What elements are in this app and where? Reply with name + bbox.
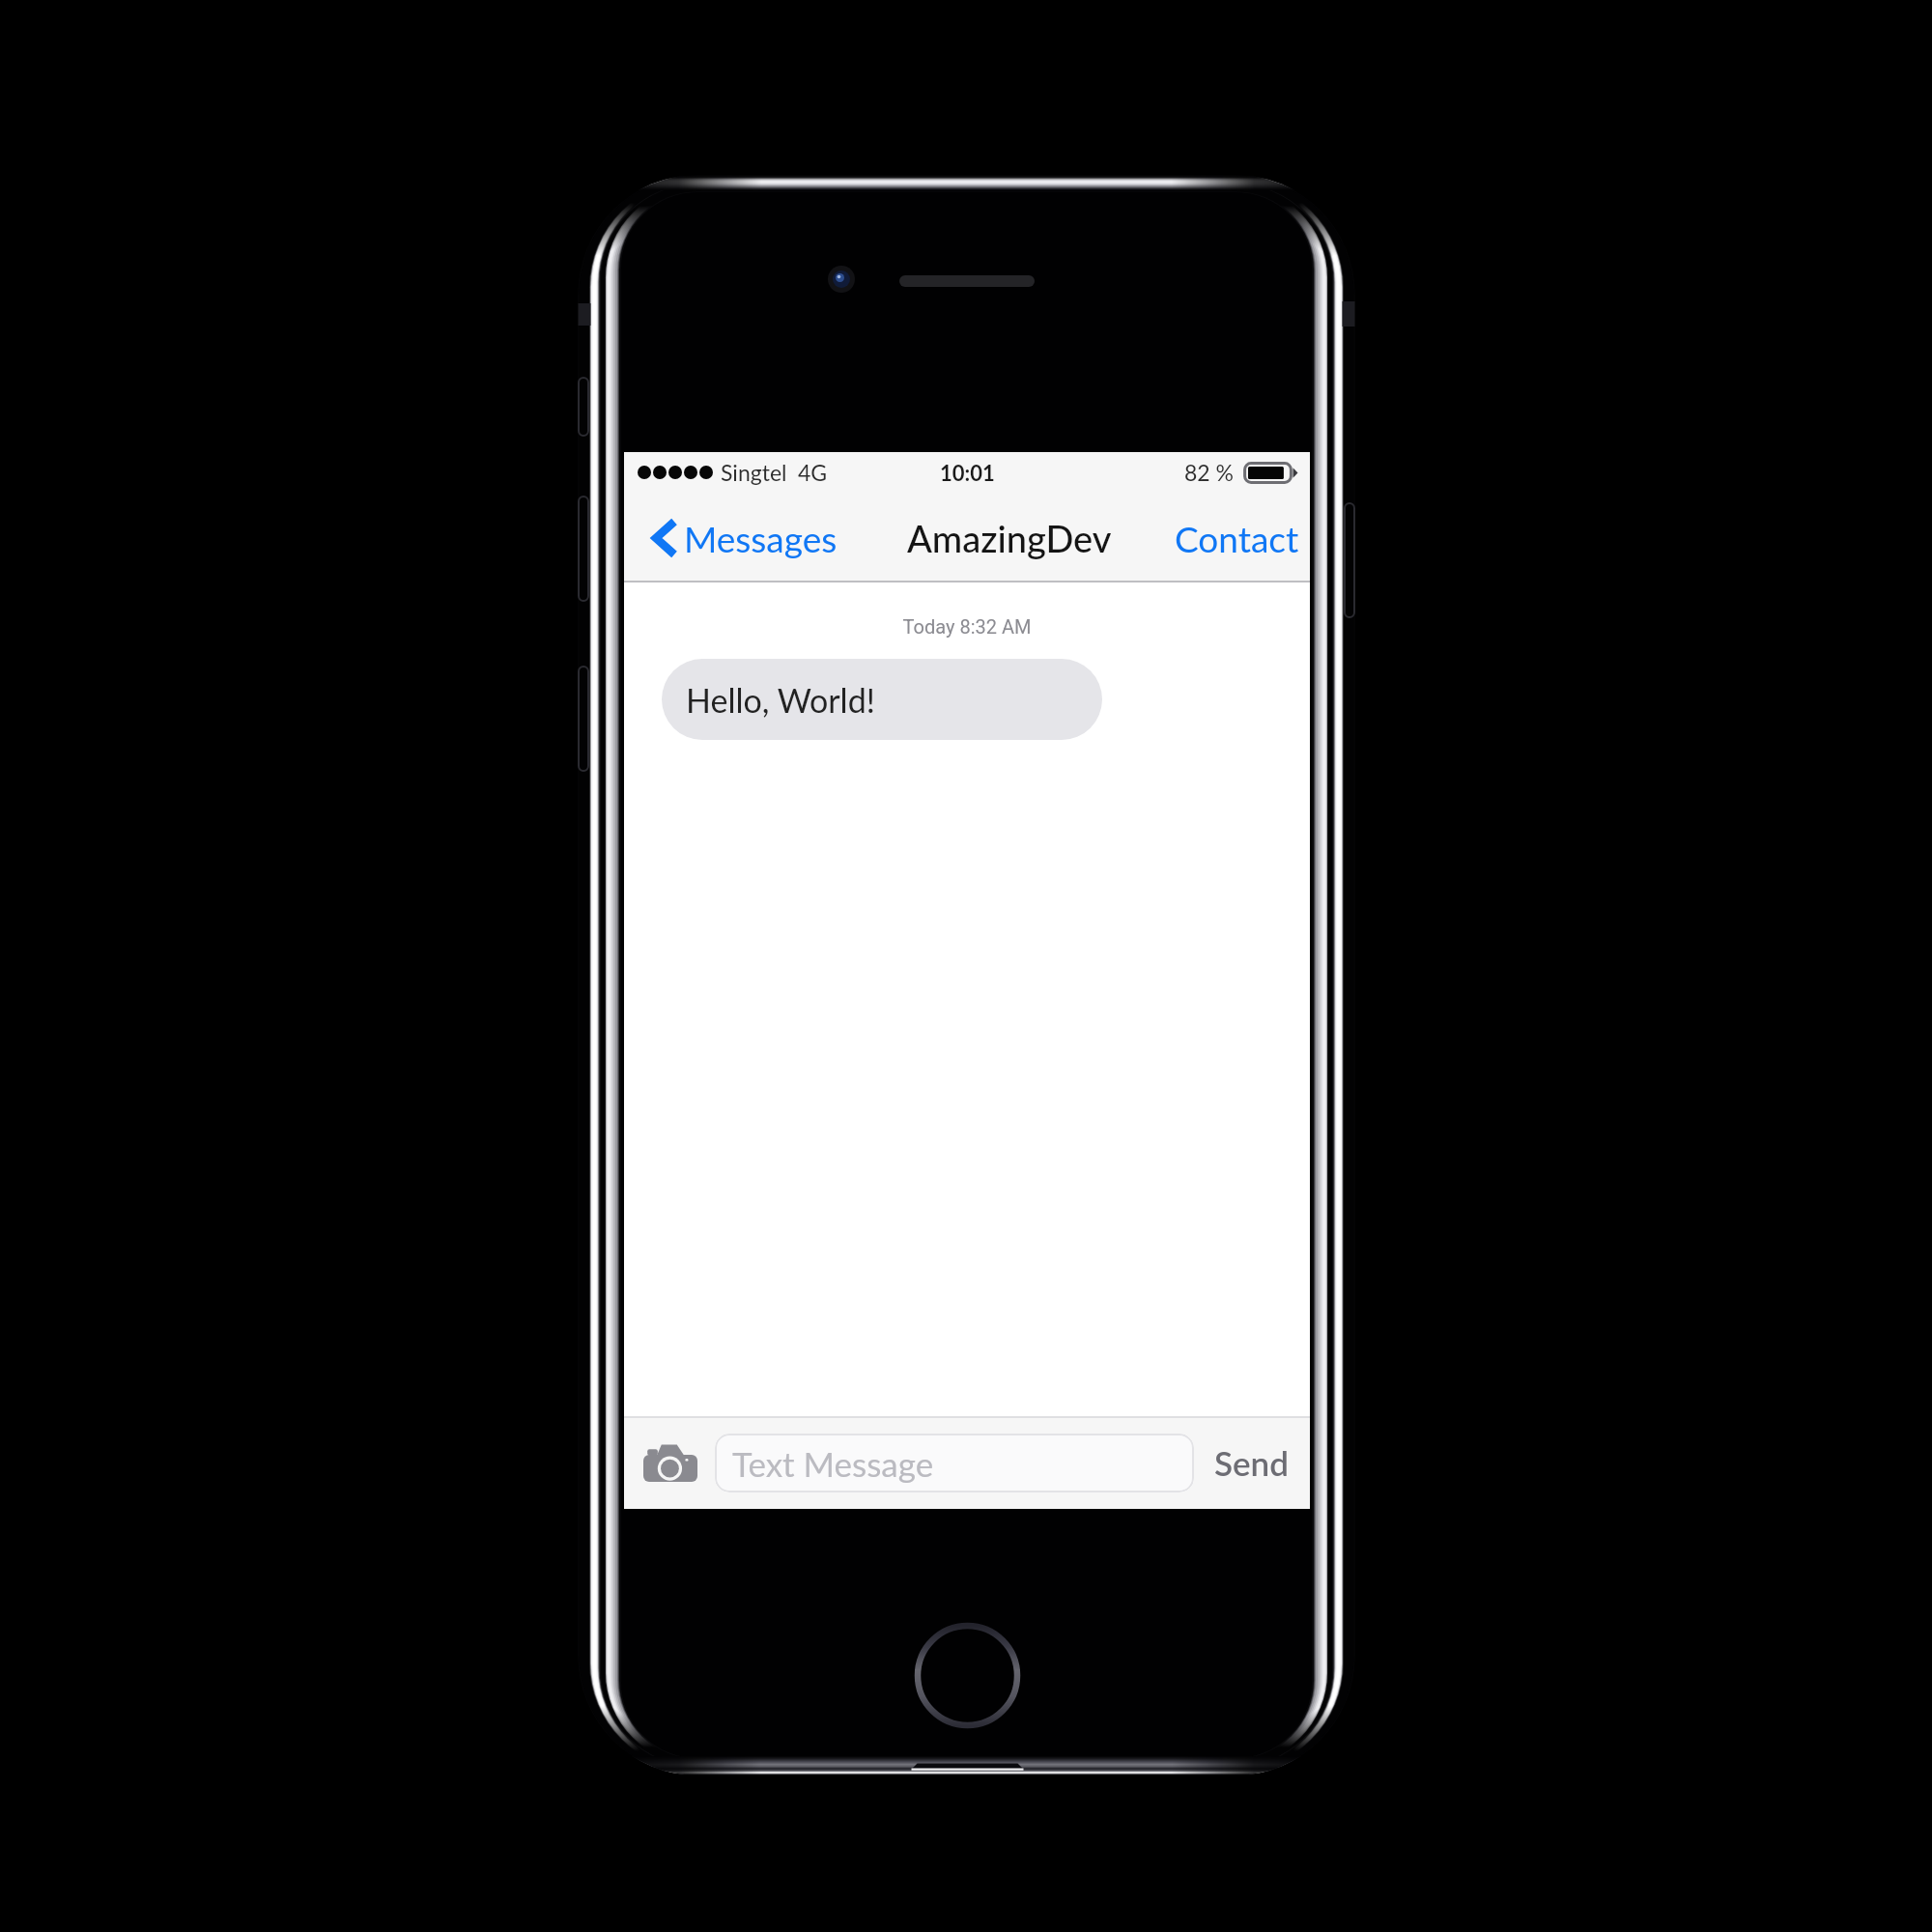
staticText: Hello, World! xyxy=(686,680,875,720)
button[interactable]: Messages xyxy=(624,493,845,582)
button[interactable]: Send xyxy=(1204,1416,1299,1509)
staticText: Contact xyxy=(1175,517,1299,559)
staticText: Singtel xyxy=(721,459,787,486)
staticText: Text Message xyxy=(732,1443,934,1484)
staticText: AmazingDev xyxy=(907,516,1112,560)
staticText: Today 8:32 AM xyxy=(624,615,1310,638)
button[interactable]: Hello, World! xyxy=(662,659,1102,740)
button[interactable]: Text Message xyxy=(715,1434,1194,1492)
staticText: 82 % xyxy=(1184,459,1235,486)
staticText: Send xyxy=(1214,1442,1289,1483)
button[interactable]: Take photo xyxy=(642,1435,698,1491)
staticText: 4G xyxy=(798,459,828,486)
staticText: 10:01 xyxy=(940,460,995,485)
button[interactable]: Contact xyxy=(1163,493,1310,582)
staticText: Messages xyxy=(684,517,838,559)
